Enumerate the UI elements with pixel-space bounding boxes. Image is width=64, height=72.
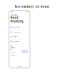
staticText: Automations: [13, 31, 21, 33]
staticText: Suggested for you: [11, 22, 24, 23]
staticText: Your assistant, on device: [14, 5, 49, 8]
button[interactable]: Shortcuts: [9, 25, 30, 30]
button[interactable]: Gallery: [9, 35, 30, 39]
staticText: Sharing: [13, 41, 19, 42]
staticText: 9:41: [11, 11, 14, 13]
staticText: Gallery: [13, 36, 18, 38]
staticText: On device: [11, 45, 15, 50]
staticText: Private by design: [11, 51, 15, 58]
button[interactable]: Automations: [9, 30, 30, 35]
button[interactable]: Sharing: [9, 39, 30, 44]
staticText: Settings: [11, 14, 18, 16]
staticText: Good morning: [11, 16, 24, 23]
staticText: Shortcuts: [13, 26, 20, 28]
